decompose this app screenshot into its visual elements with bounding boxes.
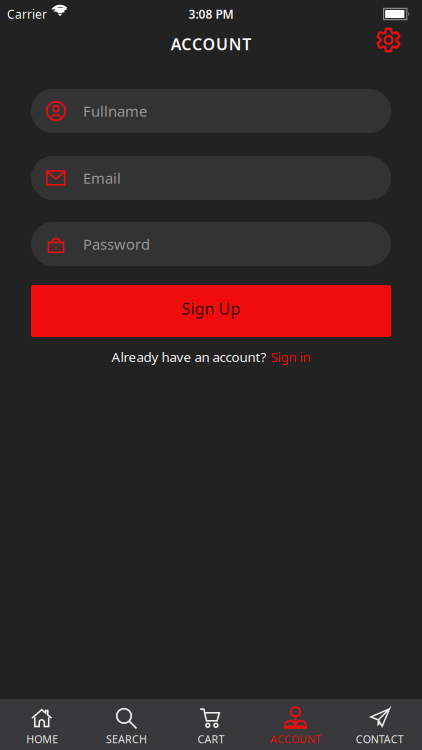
button[interactable]: CART	[169, 699, 253, 750]
staticText: Email	[83, 168, 121, 188]
staticText: CART	[197, 732, 224, 746]
staticText: Sign in	[270, 348, 310, 366]
staticText: 3:08 PM	[188, 6, 233, 22]
button[interactable]: Sign Up	[31, 285, 391, 337]
button[interactable]: Password	[31, 222, 391, 266]
staticText: Carrier	[7, 6, 47, 22]
staticText: Password	[83, 234, 150, 254]
button[interactable]	[376, 27, 422, 62]
button[interactable]: CONTACT	[338, 699, 422, 750]
button[interactable]: ACCOUNT	[253, 699, 338, 750]
staticText: HOME	[26, 732, 58, 746]
button[interactable]: Fullname	[31, 89, 391, 133]
staticText: ACCOUNT	[171, 33, 251, 55]
staticText: Fullname	[83, 101, 147, 121]
staticText: CONTACT	[356, 732, 404, 746]
staticText: Sign Up	[181, 298, 240, 319]
staticText: ACCOUNT	[270, 732, 321, 746]
button[interactable]: HOME	[0, 699, 84, 750]
button[interactable]: Already have an account?	[111, 348, 310, 366]
button[interactable]: SEARCH	[84, 699, 169, 750]
button[interactable]: Email	[31, 156, 391, 200]
staticText: Already have an account?	[111, 348, 266, 366]
staticText: SEARCH	[106, 732, 147, 746]
